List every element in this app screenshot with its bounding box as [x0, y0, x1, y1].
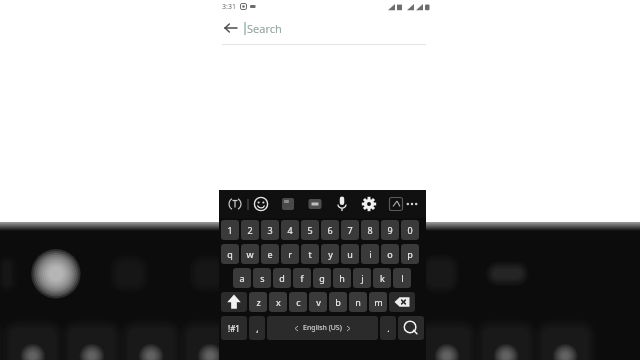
button[interactable]: i — [361, 244, 379, 264]
staticText: m — [374, 296, 383, 308]
staticText: !#1 — [228, 323, 240, 334]
staticText: a — [239, 272, 245, 284]
button[interactable]: English (US) — [267, 316, 378, 340]
button[interactable]: o — [381, 244, 399, 264]
staticText: g — [319, 272, 325, 284]
button[interactable]: r — [281, 244, 299, 264]
staticText: y — [328, 248, 333, 260]
button[interactable]: s — [253, 268, 271, 288]
staticText: , — [256, 322, 259, 334]
button[interactable]: j — [353, 268, 371, 288]
button[interactable]: v — [309, 292, 327, 312]
button[interactable]: Shift — [221, 292, 247, 312]
button[interactable]: Voice input — [333, 195, 351, 213]
button[interactable]: 2 — [241, 220, 259, 240]
button[interactable]: 7 — [341, 220, 359, 240]
button[interactable]: More options — [405, 195, 419, 213]
button[interactable]: b — [329, 292, 347, 312]
button[interactable]: . — [380, 316, 396, 340]
button[interactable]: l — [393, 268, 411, 288]
staticText: n — [355, 296, 361, 308]
button[interactable]: Translate — [387, 195, 405, 213]
staticText: o — [387, 248, 393, 260]
button[interactable]: Voice typing toggle — [226, 195, 244, 213]
staticText: d — [279, 272, 285, 284]
button[interactable]: q — [221, 244, 239, 264]
button[interactable]: e — [261, 244, 279, 264]
button[interactable]: Search — [398, 316, 424, 340]
button[interactable]: GIF — [306, 195, 324, 213]
staticText: j — [361, 272, 364, 284]
button[interactable]: 4 — [281, 220, 299, 240]
button[interactable]: u — [341, 244, 359, 264]
staticText: i — [369, 248, 372, 260]
staticText: English (US) — [303, 323, 342, 333]
staticText: b — [335, 296, 341, 308]
staticText: 5 — [307, 224, 313, 236]
button[interactable]: Backspace — [389, 292, 415, 312]
button[interactable]: z — [249, 292, 267, 312]
staticText: h — [339, 272, 345, 284]
staticText: 1 — [227, 224, 233, 236]
staticText: 7 — [347, 224, 353, 236]
staticText: 3:31 — [222, 2, 236, 12]
staticText: c — [296, 296, 301, 308]
staticText: . — [387, 322, 390, 334]
staticText: r — [288, 248, 292, 260]
staticText: 0 — [407, 224, 413, 236]
button[interactable]: 3 — [261, 220, 279, 240]
button[interactable]: 0 — [401, 220, 419, 240]
staticText: f — [300, 272, 304, 284]
button[interactable]: n — [349, 292, 367, 312]
button[interactable]: Settings — [360, 195, 378, 213]
staticText: z — [256, 296, 261, 308]
staticText: w — [246, 248, 254, 260]
staticText: t — [308, 248, 312, 260]
staticText: 6 — [327, 224, 333, 236]
button[interactable]: Back — [222, 19, 240, 37]
staticText: q — [227, 248, 233, 260]
staticText: u — [347, 248, 353, 260]
button[interactable]: Emoji — [252, 195, 270, 213]
staticText: 2 — [247, 224, 253, 236]
staticText: e — [267, 248, 273, 260]
button[interactable]: 6 — [321, 220, 339, 240]
button[interactable]: , — [249, 316, 265, 340]
button[interactable]: t — [301, 244, 319, 264]
staticText: 4 — [287, 224, 293, 236]
staticText: k — [380, 272, 385, 284]
staticText: 8 — [367, 224, 373, 236]
button[interactable]: c — [289, 292, 307, 312]
button[interactable]: d — [273, 268, 291, 288]
button[interactable]: w — [241, 244, 259, 264]
staticText: s — [260, 272, 265, 284]
staticText: x — [276, 296, 281, 308]
button[interactable]: p — [401, 244, 419, 264]
button[interactable]: !#1 — [221, 316, 247, 340]
button[interactable]: y — [321, 244, 339, 264]
button[interactable]: a — [233, 268, 251, 288]
button[interactable]: Search — [244, 15, 428, 41]
button[interactable]: 9 — [381, 220, 399, 240]
button[interactable]: g — [313, 268, 331, 288]
button[interactable]: f — [293, 268, 311, 288]
staticText: Search — [247, 21, 282, 36]
button[interactable]: Stickers — [279, 195, 297, 213]
staticText: l — [401, 272, 404, 284]
staticText: v — [316, 296, 321, 308]
button[interactable]: x — [269, 292, 287, 312]
button[interactable]: h — [333, 268, 351, 288]
staticText: 9 — [387, 224, 393, 236]
button[interactable]: 5 — [301, 220, 319, 240]
button[interactable]: 1 — [221, 220, 239, 240]
button[interactable]: k — [373, 268, 391, 288]
staticText: p — [407, 248, 413, 260]
staticText: 3 — [267, 224, 273, 236]
button[interactable]: 8 — [361, 220, 379, 240]
button[interactable]: m — [369, 292, 387, 312]
